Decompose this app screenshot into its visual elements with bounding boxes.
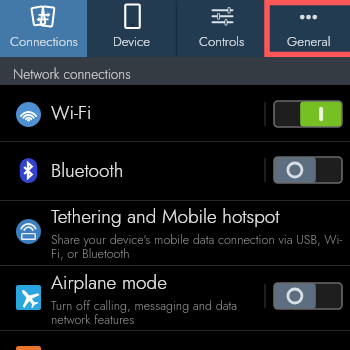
button[interactable]: Device	[87, 0, 177, 57]
staticText: Wi-Fi	[51, 99, 92, 126]
button[interactable]: Wi-Fi	[0, 85, 350, 141]
staticText: Device	[113, 32, 151, 51]
staticText: Turn off calling, messaging and data net…	[51, 297, 267, 328]
staticText: General	[287, 32, 331, 51]
staticText: Network connections	[13, 64, 131, 84]
button[interactable]: General	[267, 0, 350, 57]
button[interactable]: Wi-Fi on	[274, 101, 342, 127]
staticText: Bluetooth	[51, 157, 124, 184]
staticText: Airplane mode	[51, 269, 167, 296]
button[interactable]: Airplane mode	[0, 266, 350, 330]
staticText: Tethering and Mobile hotspot	[51, 203, 280, 230]
staticText: Controls	[199, 32, 245, 51]
button[interactable]: Bluetooth off	[274, 157, 342, 183]
staticText: Share your device's mobile data connecti…	[51, 231, 345, 262]
button[interactable]: Mobile networks	[0, 331, 350, 350]
staticText: Connections	[10, 32, 78, 51]
button[interactable]: Connections	[0, 0, 87, 57]
button[interactable]: Tethering and Mobile hotspot	[0, 201, 350, 265]
button[interactable]: Airplane mode off	[274, 283, 342, 309]
button[interactable]: Bluetooth	[0, 142, 350, 200]
button[interactable]: Controls	[177, 0, 267, 57]
